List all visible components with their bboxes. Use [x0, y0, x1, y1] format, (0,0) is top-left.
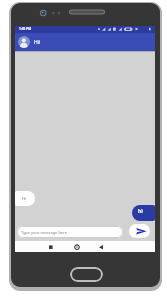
staticText: Type your message here	[21, 230, 67, 235]
button[interactable]: hi	[132, 205, 155, 221]
button[interactable]	[15, 241, 61, 252]
button[interactable]	[61, 241, 108, 252]
button[interactable]: Hii	[15, 33, 155, 51]
button[interactable]: Type your message here	[17, 226, 123, 238]
button[interactable]	[129, 224, 150, 238]
staticText: Hii	[34, 39, 41, 46]
button[interactable]	[70, 267, 103, 282]
staticText: Hi	[22, 196, 26, 201]
staticText: 1:55 PM	[19, 27, 32, 31]
button[interactable]: Hi	[15, 191, 35, 206]
staticText: hi	[138, 208, 143, 215]
